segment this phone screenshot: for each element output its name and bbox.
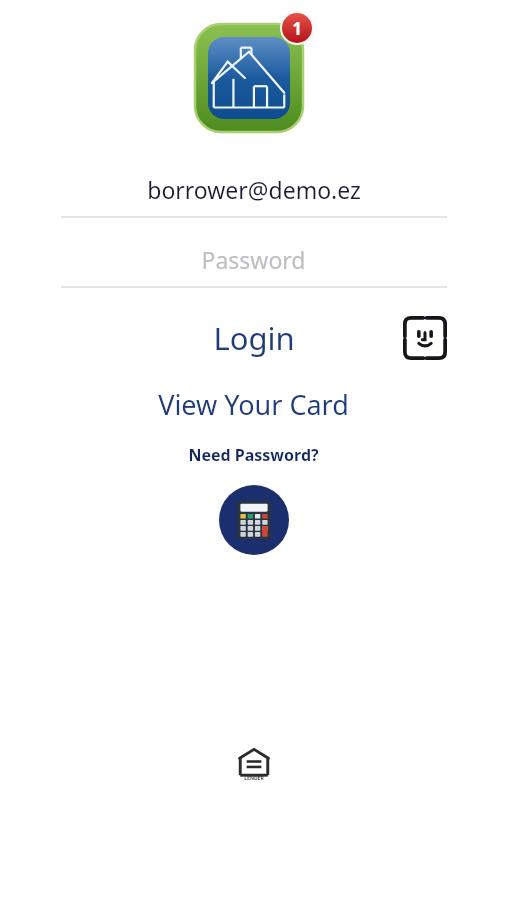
staticText: Password	[201, 244, 306, 275]
button[interactable]: View Your Card	[142, 382, 365, 427]
button[interactable]: Need Password?	[174, 441, 333, 469]
button[interactable]: Face ID login	[403, 316, 447, 360]
staticText: 1	[292, 17, 302, 40]
staticText: Login	[213, 317, 295, 359]
button[interactable]: Equal Housing Lender	[238, 748, 270, 782]
button[interactable]: Password	[0, 244, 507, 288]
button[interactable]: App icon	[195, 12, 313, 128]
button[interactable]: Calculator	[219, 485, 289, 555]
staticText: Need Password?	[188, 444, 319, 466]
staticText: borrower@demo.ez	[147, 174, 361, 205]
staticText: LENDER	[244, 775, 264, 782]
button[interactable]: Login	[195, 313, 313, 363]
button[interactable]: borrower@demo.ez	[0, 174, 507, 218]
staticText: View Your Card	[158, 386, 349, 423]
